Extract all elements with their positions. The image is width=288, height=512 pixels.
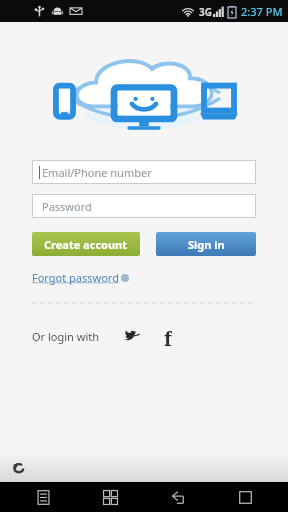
staticText: Or login with <box>32 329 100 344</box>
staticText: Sign in <box>188 237 225 252</box>
button[interactable]: Home <box>220 482 270 512</box>
button[interactable]: Sign in <box>156 232 256 256</box>
button[interactable]: Menu <box>18 482 68 512</box>
button[interactable]: Create account <box>32 232 140 256</box>
staticText: 3G <box>199 5 212 19</box>
staticText: Forgot password <box>32 270 119 285</box>
staticText: Password <box>42 199 92 214</box>
staticText: f <box>164 326 172 346</box>
button[interactable]: Back <box>8 457 30 479</box>
button[interactable]: Login with Twitter <box>122 326 142 346</box>
staticText: 2:37 PM <box>241 4 283 19</box>
button[interactable]: Password <box>32 194 256 218</box>
staticText: Create account <box>44 237 128 252</box>
button[interactable]: Email/Phone number <box>32 160 256 184</box>
staticText: Email/Phone number <box>42 165 152 180</box>
button[interactable]: Login with Facebook <box>158 326 178 346</box>
button[interactable]: Forgot password <box>32 268 129 287</box>
button[interactable]: Recent apps <box>85 482 135 512</box>
button[interactable]: Back <box>153 482 203 512</box>
